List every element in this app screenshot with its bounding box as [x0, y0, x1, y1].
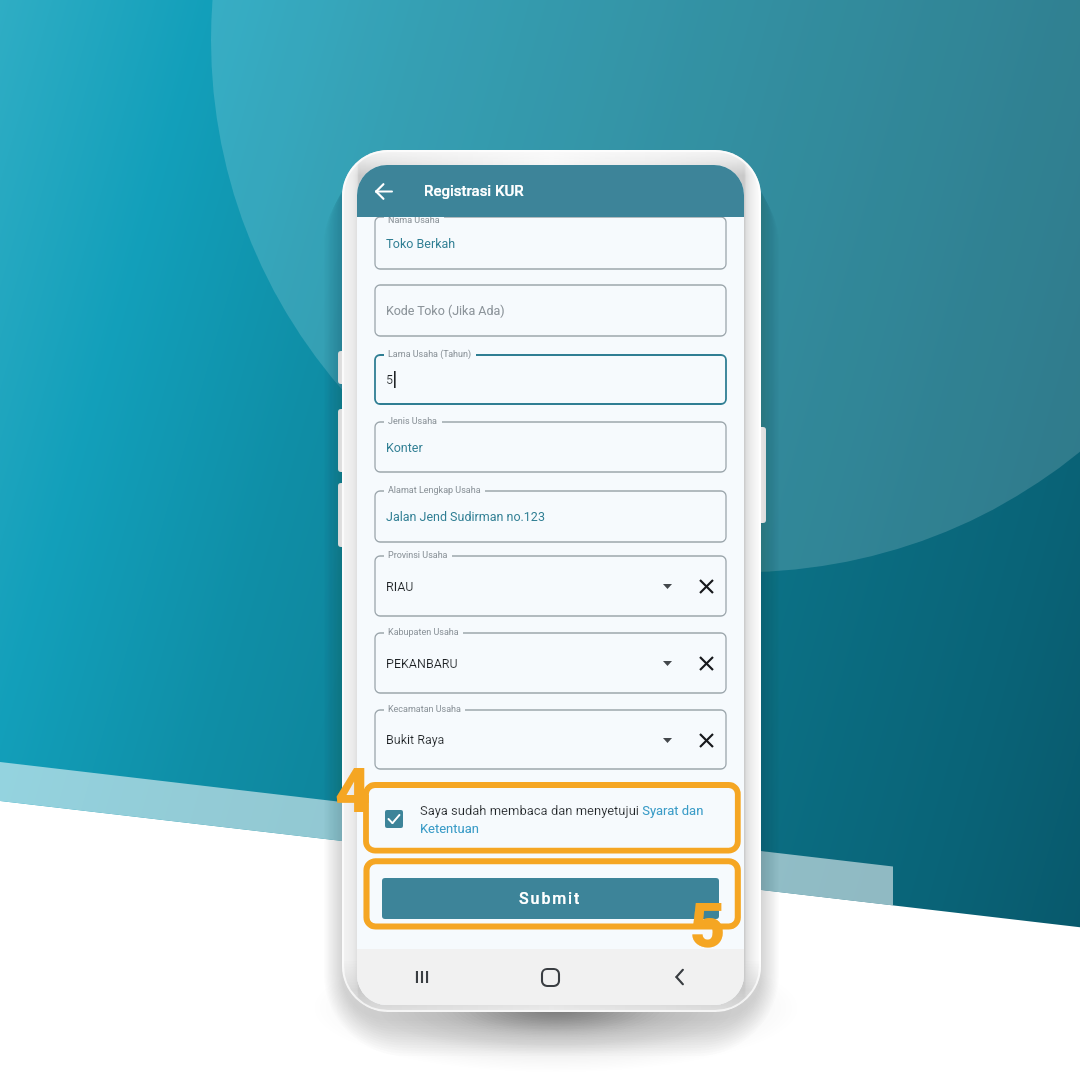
- button[interactable]: Konter: [375, 422, 726, 472]
- staticText: Kecamatan Usaha: [388, 704, 461, 715]
- button[interactable]: Kode Toko (Jika Ada): [375, 285, 726, 336]
- button[interactable]: Saya sudah membaca dan menyetujui Syarat…: [375, 794, 726, 844]
- staticText: Registrasi KUR: [424, 182, 524, 200]
- staticText: Jalan Jend Sudirman no.123: [386, 509, 545, 524]
- button[interactable]: Clear: [694, 574, 718, 598]
- button[interactable]: Open dropdown: [656, 652, 678, 674]
- staticText: Alamat Lengkap Usaha: [388, 485, 481, 496]
- staticText: PEKANBARU: [386, 656, 458, 671]
- staticText: Konter: [386, 440, 423, 455]
- button[interactable]: Toko Berkah: [375, 217, 726, 269]
- button[interactable]: Back: [367, 174, 401, 208]
- staticText: Kabupaten Usaha: [388, 627, 459, 638]
- button[interactable]: Bukit Raya: [375, 710, 726, 769]
- button[interactable]: Back: [615, 949, 744, 1005]
- staticText: 5: [690, 890, 726, 961]
- staticText: Submit: [519, 889, 582, 908]
- staticText: Toko Berkah: [386, 236, 456, 251]
- button[interactable]: PEKANBARU: [375, 633, 726, 693]
- button[interactable]: Clear: [694, 651, 718, 675]
- staticText: Kode Toko (Jika Ada): [386, 303, 505, 318]
- staticText: Bukit Raya: [386, 732, 445, 747]
- staticText: Saya sudah membaca dan menyetujui Syarat…: [420, 803, 726, 836]
- button[interactable]: Submit: [382, 878, 719, 919]
- staticText: Jenis Usaha: [388, 416, 438, 427]
- button[interactable]: Clear: [694, 728, 718, 752]
- staticText: Nama Usaha: [388, 215, 440, 226]
- button[interactable]: Recents: [357, 949, 486, 1005]
- button[interactable]: Open dropdown: [656, 729, 678, 751]
- staticText: RIAU: [386, 579, 414, 594]
- staticText: Provinsi Usaha: [388, 550, 448, 561]
- button[interactable]: Jalan Jend Sudirman no.123: [375, 491, 726, 542]
- staticText: 4: [335, 755, 371, 826]
- button[interactable]: 5: [375, 355, 726, 404]
- staticText: Lama Usaha (Tahun): [388, 349, 472, 360]
- staticText: 5: [386, 372, 394, 387]
- button[interactable]: RIAU: [375, 556, 726, 616]
- button[interactable]: Home: [486, 949, 615, 1005]
- button[interactable]: Open dropdown: [656, 575, 678, 597]
